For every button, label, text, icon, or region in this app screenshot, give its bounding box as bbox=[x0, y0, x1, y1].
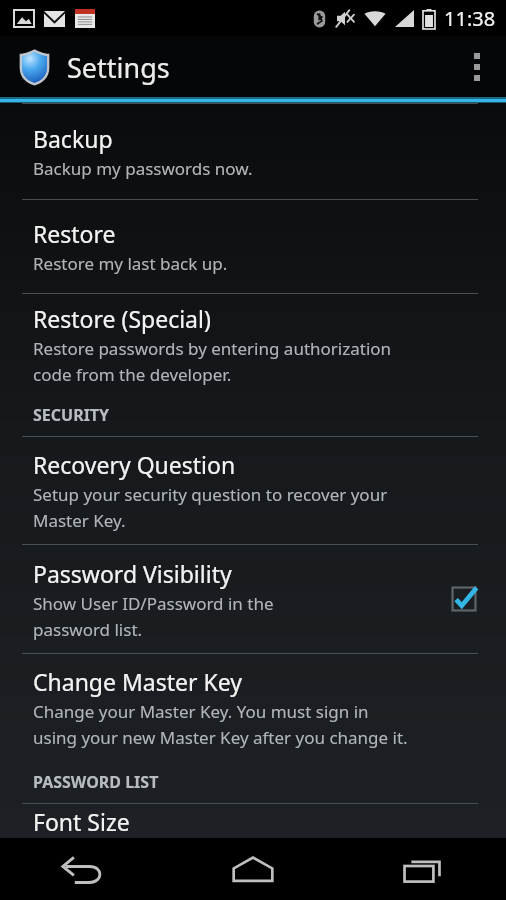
staticText: Font Size bbox=[33, 806, 130, 837]
button[interactable]: Recovery Question bbox=[0, 437, 506, 544]
staticText: Restore passwords by entering authorizat… bbox=[33, 337, 392, 360]
staticText: SECURITY bbox=[33, 404, 110, 426]
staticText: using your new Master Key after you chan… bbox=[33, 726, 408, 749]
staticText: Recovery Question bbox=[33, 449, 236, 480]
staticText: Restore bbox=[33, 218, 116, 249]
staticText: code from the developer. bbox=[33, 363, 232, 386]
button[interactable]: Backup bbox=[0, 104, 506, 199]
staticText: Change Master Key bbox=[33, 666, 242, 697]
staticText: Settings bbox=[67, 49, 170, 86]
staticText: PASSWORD LIST bbox=[33, 771, 159, 793]
staticText: 11:38 bbox=[444, 5, 496, 32]
button[interactable]: Home bbox=[168, 838, 337, 900]
button[interactable]: Password Visibility bbox=[0, 545, 506, 653]
staticText: Master Key. bbox=[33, 509, 126, 532]
button[interactable]: Font Size bbox=[0, 804, 506, 838]
button[interactable]: Password Visibility toggle bbox=[444, 579, 484, 619]
button[interactable]: Restore bbox=[0, 200, 506, 293]
button[interactable]: Recent apps bbox=[337, 838, 506, 900]
button[interactable]: Restore (Special) bbox=[0, 294, 506, 394]
staticText: Restore my last back up. bbox=[33, 252, 228, 275]
staticText: Password Visibility bbox=[33, 558, 232, 589]
staticText: Backup my passwords now. bbox=[33, 157, 253, 180]
staticText: Change your Master Key. You must sign in bbox=[33, 700, 369, 723]
staticText: Setup your security question to recover … bbox=[33, 483, 388, 506]
button[interactable]: More options bbox=[448, 36, 506, 97]
staticText: Show User ID/Password in the bbox=[33, 592, 274, 615]
staticText: Backup bbox=[33, 123, 113, 154]
staticText: password list. bbox=[33, 618, 143, 641]
button[interactable]: Change Master Key bbox=[0, 654, 506, 761]
button[interactable]: Back bbox=[0, 838, 168, 900]
staticText: Restore (Special) bbox=[33, 303, 211, 334]
